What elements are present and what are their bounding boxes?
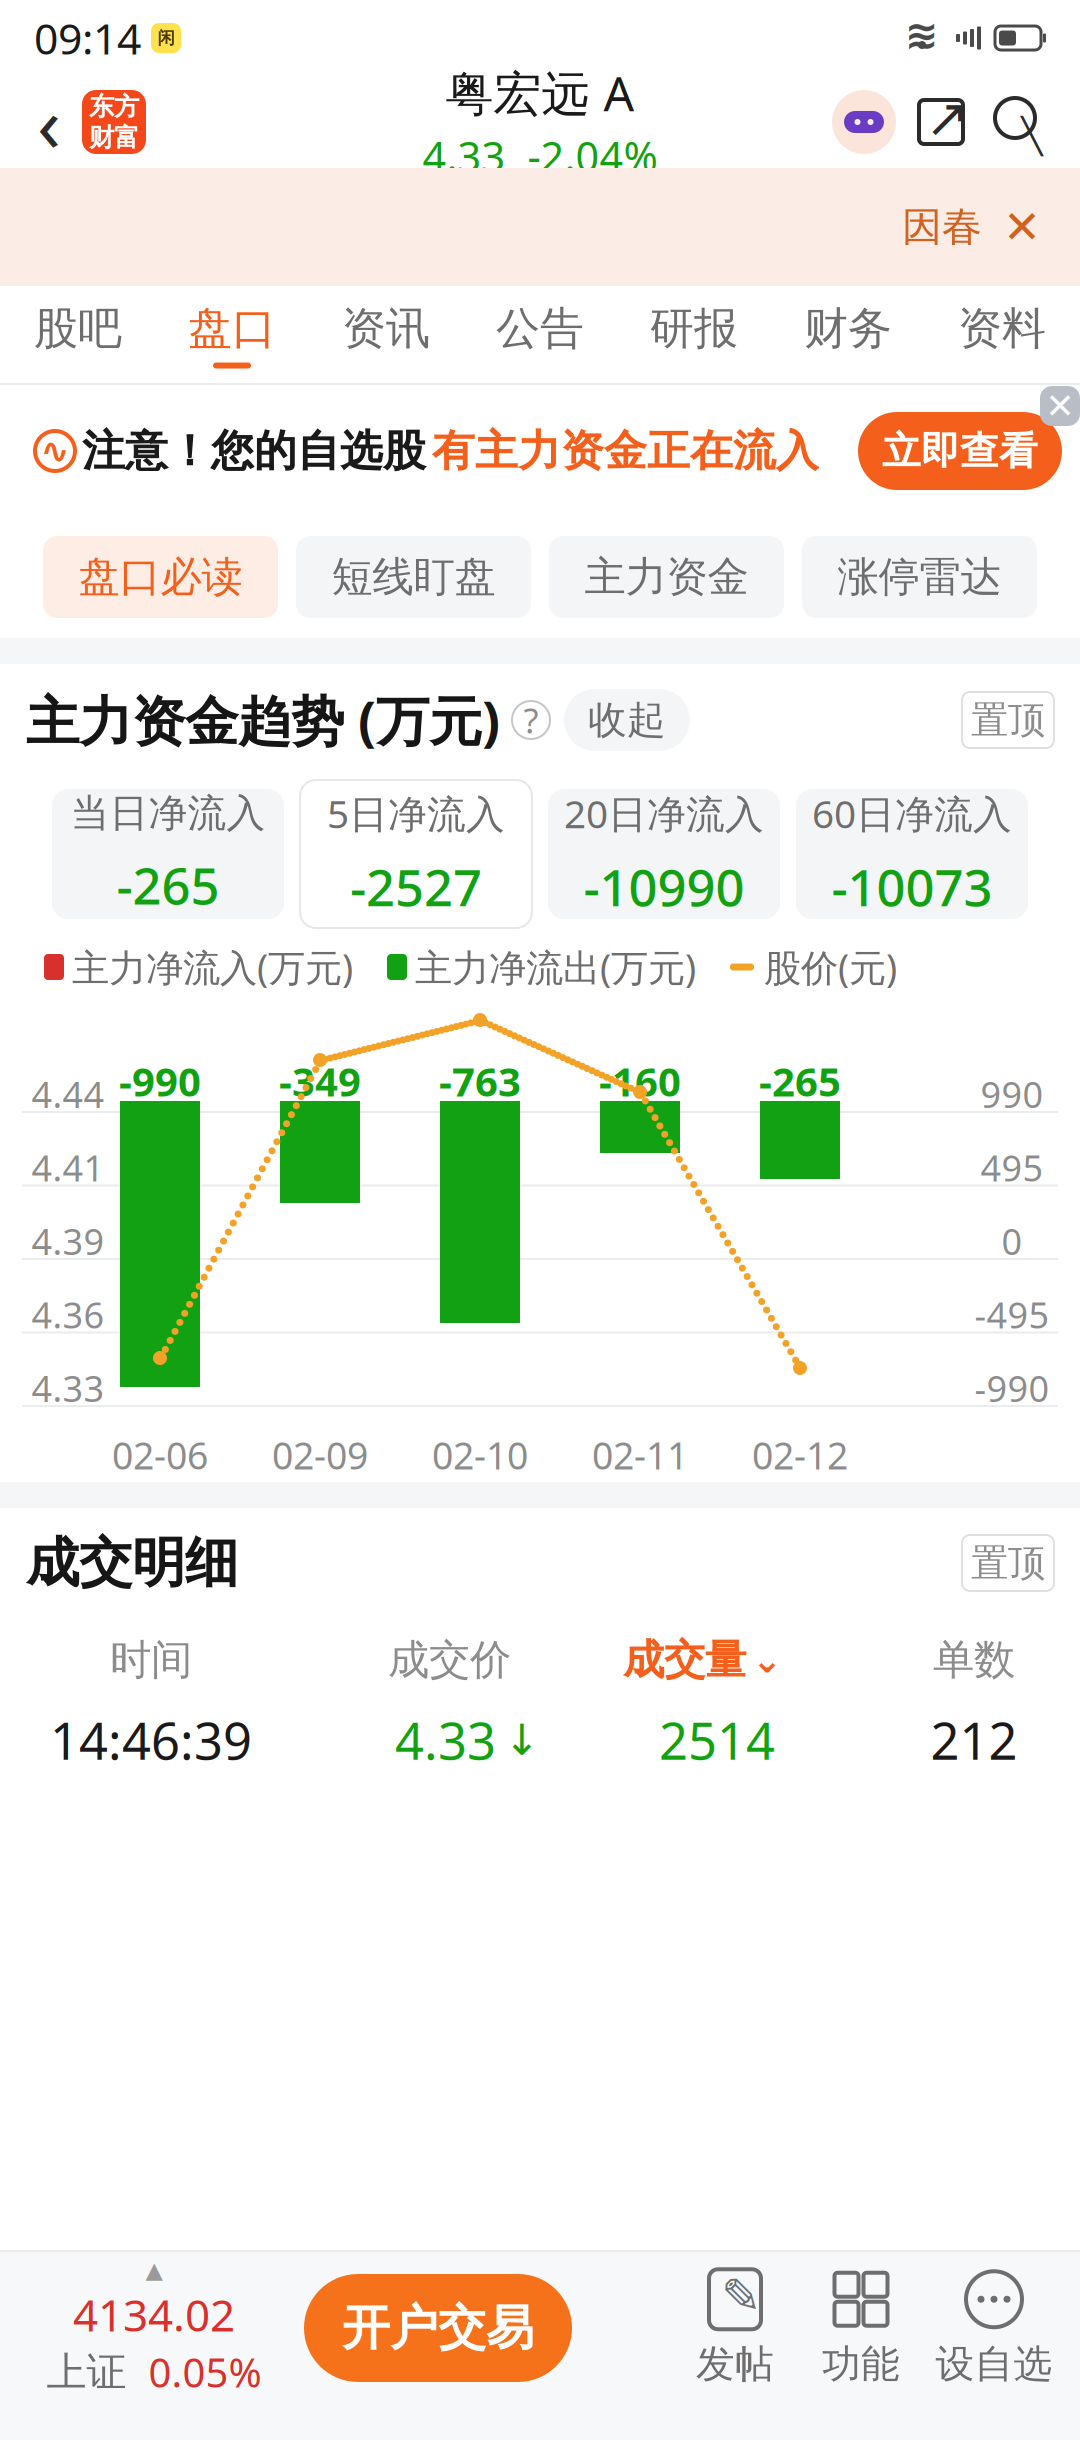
staticText: 公告 [496, 301, 584, 355]
staticText: ⌄ [752, 1640, 782, 1680]
button[interactable]: 资讯 [309, 287, 463, 383]
staticText: 主力资金 [584, 552, 748, 602]
button[interactable]: 盘口 [155, 287, 309, 383]
button[interactable]: 5日净流入 [300, 780, 532, 928]
button[interactable]: 盘口必读 [43, 536, 278, 618]
staticText: 股吧 [34, 301, 122, 355]
button[interactable]: AI 助手 [826, 84, 902, 160]
button[interactable]: ∿ [0, 386, 1080, 516]
staticText: 股价(元) [764, 942, 897, 992]
staticText: 当日净流入 [70, 790, 265, 837]
button[interactable]: 设自选 [924, 2253, 1064, 2403]
staticText: 02-10 [432, 1430, 528, 1480]
staticText: 资料 [958, 301, 1046, 355]
staticText: -2.04% [527, 128, 657, 183]
staticText: 设自选 [935, 2340, 1052, 2388]
staticText: -990 [974, 1364, 1049, 1412]
staticText: 财富 [89, 122, 139, 153]
staticText: 990 [980, 1070, 1043, 1118]
staticText: 成交量 [623, 1635, 746, 1685]
staticText: ✕ [1045, 386, 1074, 426]
button[interactable]: ▲ [4, 2253, 304, 2403]
button[interactable]: 财务 [771, 287, 925, 383]
button[interactable]: 主力资金 [549, 536, 784, 618]
staticText: 涨停雷达 [837, 552, 1001, 602]
staticText: -265 [759, 1054, 841, 1107]
staticText: 02-06 [112, 1430, 208, 1480]
staticText: 4134.02 [73, 2285, 235, 2343]
staticText: 主力资金趋势 (万元) [26, 685, 500, 755]
staticText: -10990 [583, 853, 744, 920]
staticText: 495 [980, 1144, 1043, 1191]
staticText: ≋ [905, 12, 939, 58]
staticText: 发帖 [696, 2340, 774, 2388]
staticText: 盘口必读 [78, 552, 242, 602]
button[interactable]: ✎ [672, 2253, 798, 2403]
button[interactable]: 开户交易 [304, 2274, 572, 2382]
button[interactable]: 涨停雷达 [802, 536, 1037, 618]
staticText: 置顶 [971, 1540, 1045, 1586]
button[interactable]: 关闭广告 [1040, 386, 1080, 426]
button[interactable]: 返回 [16, 76, 82, 168]
staticText: -495 [974, 1291, 1049, 1338]
button[interactable]: 20日净流入 [548, 789, 780, 919]
staticText: 功能 [822, 2340, 900, 2388]
staticText: 粤宏远 A [445, 61, 634, 124]
staticText: -763 [439, 1054, 521, 1107]
button[interactable]: 关闭提示 [982, 190, 1062, 264]
staticText: 02-09 [272, 1430, 368, 1480]
staticText: 60日净流入 [812, 788, 1012, 839]
staticText: 09:14 [34, 10, 141, 66]
button[interactable]: 东方财富 [82, 90, 146, 154]
staticText: ∿ [40, 431, 69, 471]
staticText: 注意！ [82, 425, 211, 477]
button[interactable]: 置顶 [962, 692, 1054, 748]
button[interactable]: 短线盯盘 [296, 536, 531, 618]
button[interactable]: 当日净流入 [52, 789, 284, 919]
staticText: 20日净流入 [564, 788, 764, 839]
button[interactable]: 资料 [925, 287, 1079, 383]
staticText: 置顶 [971, 697, 1045, 743]
staticText: 财务 [804, 301, 892, 355]
staticText: 主力净流入(万元) [72, 942, 353, 992]
staticText: 4.33 [31, 1364, 104, 1412]
staticText: -2527 [350, 853, 482, 920]
staticText: 主力净流出(万元) [415, 942, 696, 992]
staticText: 成交价 [388, 1635, 511, 1685]
staticText: ‹ [37, 71, 61, 173]
staticText: 上证 [46, 2347, 126, 2397]
button[interactable]: 分享 [902, 83, 980, 161]
staticText: 4.36 [31, 1291, 104, 1338]
staticText: ? [523, 697, 538, 743]
staticText: 收起 [588, 696, 666, 744]
staticText: 212 [930, 1706, 1017, 1774]
button[interactable]: 搜索 [980, 83, 1058, 161]
staticText: ╲ [1021, 116, 1042, 156]
button[interactable]: 研报 [617, 287, 771, 383]
staticText: 您的自选股 [211, 425, 426, 477]
staticText: 开户交易 [342, 2298, 534, 2357]
button[interactable]: 置顶 [962, 1535, 1054, 1591]
staticText: -349 [279, 1054, 361, 1107]
button[interactable]: 公告 [463, 287, 617, 383]
staticText: 闲 [157, 27, 174, 49]
staticText: -265 [116, 851, 219, 918]
button[interactable]: 股吧 [1, 287, 155, 383]
button[interactable]: 成交量 [623, 1635, 782, 1685]
staticText: 02-11 [592, 1430, 688, 1480]
button[interactable]: 收起 [564, 689, 690, 751]
staticText: 短线盯盘 [331, 552, 495, 602]
button[interactable]: 因春 [902, 202, 982, 251]
staticText: 成交明细 [26, 1530, 238, 1596]
staticText: -10073 [831, 853, 992, 920]
staticText: 14:46:39 [50, 1706, 252, 1774]
staticText: 0.05% [148, 2345, 261, 2399]
button[interactable]: 说明 [512, 701, 550, 739]
staticText: ✎ [721, 2269, 761, 2323]
button[interactable]: 60日净流入 [796, 789, 1028, 919]
staticText: 4.39 [31, 1217, 104, 1265]
staticText: ✕ [1003, 201, 1041, 253]
button[interactable]: 功能 [798, 2253, 924, 2403]
staticText: 5日净流入 [327, 788, 505, 839]
staticText: 2514 [659, 1706, 775, 1774]
